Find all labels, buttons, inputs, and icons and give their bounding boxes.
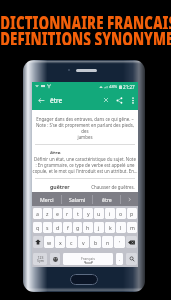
staticText: z bbox=[46, 210, 49, 217]
staticText: s bbox=[46, 224, 49, 231]
staticText: c bbox=[70, 239, 73, 246]
staticText: copule, et le mot qui l'introduit est un… bbox=[32, 168, 138, 174]
staticText: : En grammaire, ce type de verbe est app… bbox=[32, 162, 138, 168]
button[interactable]: Salami bbox=[62, 192, 92, 206]
staticText: être bbox=[102, 196, 112, 203]
button[interactable]: k bbox=[105, 222, 115, 233]
staticText: 48% bbox=[109, 84, 118, 90]
staticText: v bbox=[82, 239, 85, 246]
button[interactable]: g bbox=[73, 222, 82, 233]
button[interactable]: 123 Sym bbox=[33, 253, 47, 265]
button[interactable]: guêtrer bbox=[32, 183, 138, 190]
button[interactable]: e bbox=[53, 208, 62, 219]
staticText: a bbox=[36, 210, 39, 217]
staticText: Engager dans des entraves, dans ce qui g… bbox=[32, 116, 138, 122]
staticText: Définir un état, une caractéristique du … bbox=[32, 156, 138, 162]
staticText: e bbox=[56, 210, 59, 217]
button[interactable]: n bbox=[102, 236, 113, 248]
staticText: être bbox=[50, 96, 63, 105]
button[interactable]: s bbox=[43, 222, 52, 233]
button[interactable]: w bbox=[44, 236, 54, 248]
button[interactable]: Back bbox=[32, 90, 50, 110]
staticText: t bbox=[77, 210, 79, 217]
staticText: Salami bbox=[69, 196, 86, 203]
staticText: g bbox=[76, 224, 80, 231]
button[interactable]: t bbox=[73, 208, 82, 219]
staticText: k bbox=[109, 224, 112, 231]
staticText: ' bbox=[119, 239, 121, 246]
button[interactable]: x bbox=[55, 236, 65, 248]
staticText: i bbox=[109, 210, 111, 217]
button[interactable]: f bbox=[63, 222, 72, 233]
button[interactable]: Share bbox=[112, 90, 127, 110]
staticText: . bbox=[119, 256, 121, 263]
staticText: guêtrer bbox=[50, 183, 70, 190]
button[interactable]: ' bbox=[114, 236, 125, 248]
button[interactable]: h bbox=[83, 222, 93, 233]
button[interactable]: Français bbox=[63, 253, 113, 265]
button[interactable]: empêtrer bbox=[32, 111, 138, 140]
staticText: Merci bbox=[40, 196, 54, 203]
button[interactable]: Search bbox=[126, 253, 137, 265]
button[interactable]: Clear bbox=[100, 90, 112, 110]
staticText: Note : S'se dit proprement en parlant de… bbox=[32, 122, 138, 134]
button[interactable]: u bbox=[94, 208, 104, 219]
staticText: 21:27 bbox=[123, 84, 135, 90]
staticText: p bbox=[130, 210, 134, 217]
button[interactable]: Emoji bbox=[50, 253, 60, 265]
button[interactable]: j bbox=[94, 222, 104, 233]
staticText: jambes bbox=[32, 134, 138, 140]
button[interactable]: o bbox=[116, 208, 126, 219]
staticText: x bbox=[59, 239, 62, 246]
staticText: w bbox=[47, 239, 52, 246]
staticText: q bbox=[36, 224, 40, 231]
button[interactable]: More options bbox=[127, 90, 138, 110]
staticText: être bbox=[50, 149, 61, 154]
button[interactable]: m bbox=[127, 222, 137, 233]
button[interactable]: d bbox=[53, 222, 62, 233]
staticText: Français bbox=[81, 256, 95, 261]
button[interactable]: y bbox=[83, 208, 93, 219]
button[interactable]: Shift bbox=[33, 236, 43, 248]
staticText: y bbox=[87, 210, 90, 217]
button[interactable]: More suggestions bbox=[121, 192, 138, 206]
button[interactable]: Merci bbox=[32, 192, 61, 206]
staticText: Chausser de guêtres. bbox=[91, 184, 135, 190]
staticText: m bbox=[130, 224, 135, 231]
button[interactable]: Delete bbox=[126, 236, 137, 248]
staticText: n bbox=[106, 239, 110, 246]
button[interactable]: b bbox=[90, 236, 101, 248]
button[interactable]: l bbox=[116, 222, 126, 233]
staticText: 123 Sym bbox=[37, 255, 44, 263]
staticText: j bbox=[98, 224, 100, 231]
staticText: d bbox=[56, 224, 60, 231]
button[interactable]: être bbox=[32, 149, 138, 174]
staticText: u bbox=[97, 210, 101, 217]
staticText: f bbox=[67, 224, 69, 231]
button[interactable]: être bbox=[93, 192, 120, 206]
button[interactable]: q bbox=[33, 222, 42, 233]
button[interactable]: p bbox=[127, 208, 137, 219]
button[interactable]: z bbox=[43, 208, 52, 219]
button[interactable]: i bbox=[105, 208, 115, 219]
staticText: h bbox=[86, 224, 90, 231]
button[interactable]: a bbox=[33, 208, 42, 219]
staticText: b bbox=[94, 239, 98, 246]
staticText: DICTIONNAIRE FRANCAIS bbox=[0, 9, 171, 29]
staticText: r bbox=[66, 210, 69, 217]
staticText: l bbox=[120, 224, 122, 231]
staticText: DEFINITIONS SYNONYMES bbox=[0, 25, 171, 45]
button[interactable]: v bbox=[78, 236, 89, 248]
button[interactable]: c bbox=[66, 236, 77, 248]
staticText: o bbox=[119, 210, 123, 217]
button[interactable]: . bbox=[116, 253, 123, 265]
button[interactable]: r bbox=[63, 208, 72, 219]
